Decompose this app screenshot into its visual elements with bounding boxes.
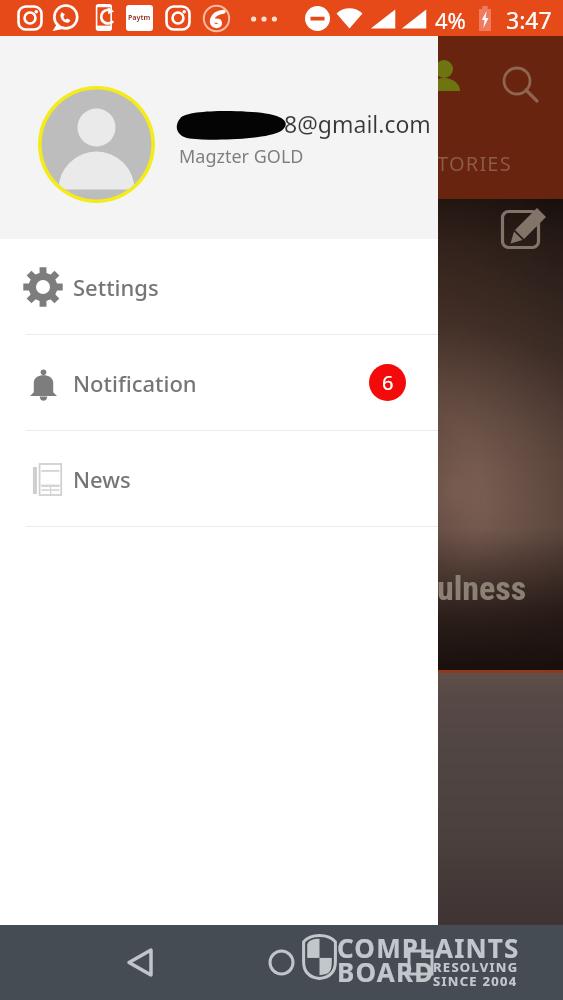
staticText: Notification — [73, 368, 197, 398]
button[interactable]: Notification — [0, 335, 438, 431]
staticText: Settings — [73, 272, 159, 302]
staticText: TORIES — [437, 150, 512, 177]
staticText: COMPLAINTS — [337, 930, 520, 965]
button[interactable]: Recent apps — [398, 940, 443, 985]
staticText: Magzter GOLD — [179, 144, 304, 169]
staticText: Paytm — [128, 13, 151, 23]
staticText: ulness — [437, 568, 527, 608]
button[interactable]: Home — [259, 940, 304, 985]
staticText: SINCE 2004 — [433, 972, 518, 990]
staticText: 4% — [435, 5, 466, 35]
staticText: 8@gmail.com — [284, 108, 431, 139]
staticText: 6 — [382, 369, 394, 396]
button[interactable]: Settings — [0, 239, 438, 335]
button[interactable]: News — [0, 431, 438, 527]
button[interactable]: Compose — [500, 208, 550, 258]
button[interactable]: Back — [118, 940, 163, 985]
staticText: BOARD — [337, 954, 435, 989]
staticText: 3:47 — [506, 4, 552, 35]
staticText: News — [73, 464, 131, 494]
button[interactable]: Search — [500, 64, 542, 106]
staticText: RESOLVING — [433, 958, 519, 976]
